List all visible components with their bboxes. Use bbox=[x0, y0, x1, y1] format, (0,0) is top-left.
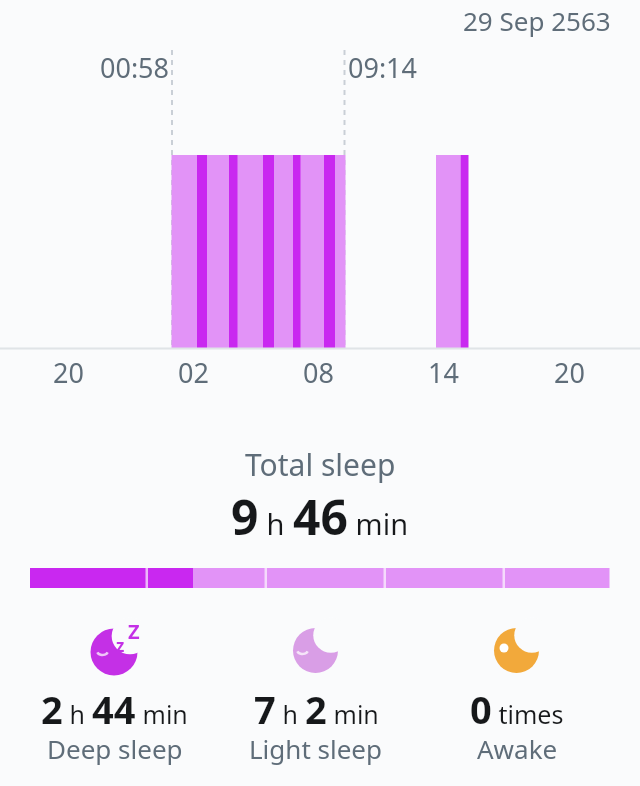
staticText: 46 bbox=[293, 484, 348, 549]
button[interactable]: 7 bbox=[249, 683, 383, 770]
staticText: 14 bbox=[428, 354, 459, 391]
staticText: 0 bbox=[470, 683, 492, 735]
staticText: h bbox=[63, 697, 92, 731]
staticText: 9 bbox=[231, 484, 259, 549]
staticText: 09:14 bbox=[348, 49, 418, 86]
staticText: 44 bbox=[92, 683, 136, 735]
staticText: Light sleep bbox=[249, 731, 383, 766]
staticText: min bbox=[327, 697, 379, 731]
staticText: z bbox=[116, 634, 125, 657]
staticText: 2 bbox=[305, 683, 327, 735]
staticText: 00:58 bbox=[100, 49, 170, 86]
staticText: 02 bbox=[178, 354, 209, 391]
staticText: 20 bbox=[53, 354, 84, 391]
staticText: 2 bbox=[41, 683, 63, 735]
staticText: min bbox=[348, 504, 409, 543]
staticText: h bbox=[276, 697, 305, 731]
staticText: Deep sleep bbox=[47, 731, 183, 766]
button[interactable]: 0 bbox=[470, 683, 564, 770]
staticText: Awake bbox=[477, 731, 558, 766]
button[interactable]: 29 Sep 2563 bbox=[463, 3, 611, 38]
button[interactable]: 2 bbox=[41, 683, 188, 770]
staticText: Total sleep bbox=[245, 444, 396, 485]
staticText: Z bbox=[128, 618, 140, 645]
staticText: 08 bbox=[303, 354, 334, 391]
staticText: h bbox=[259, 504, 293, 543]
staticText: min bbox=[136, 697, 188, 731]
staticText: 7 bbox=[254, 683, 276, 735]
staticText: times bbox=[492, 697, 564, 731]
staticText: 20 bbox=[554, 354, 585, 391]
